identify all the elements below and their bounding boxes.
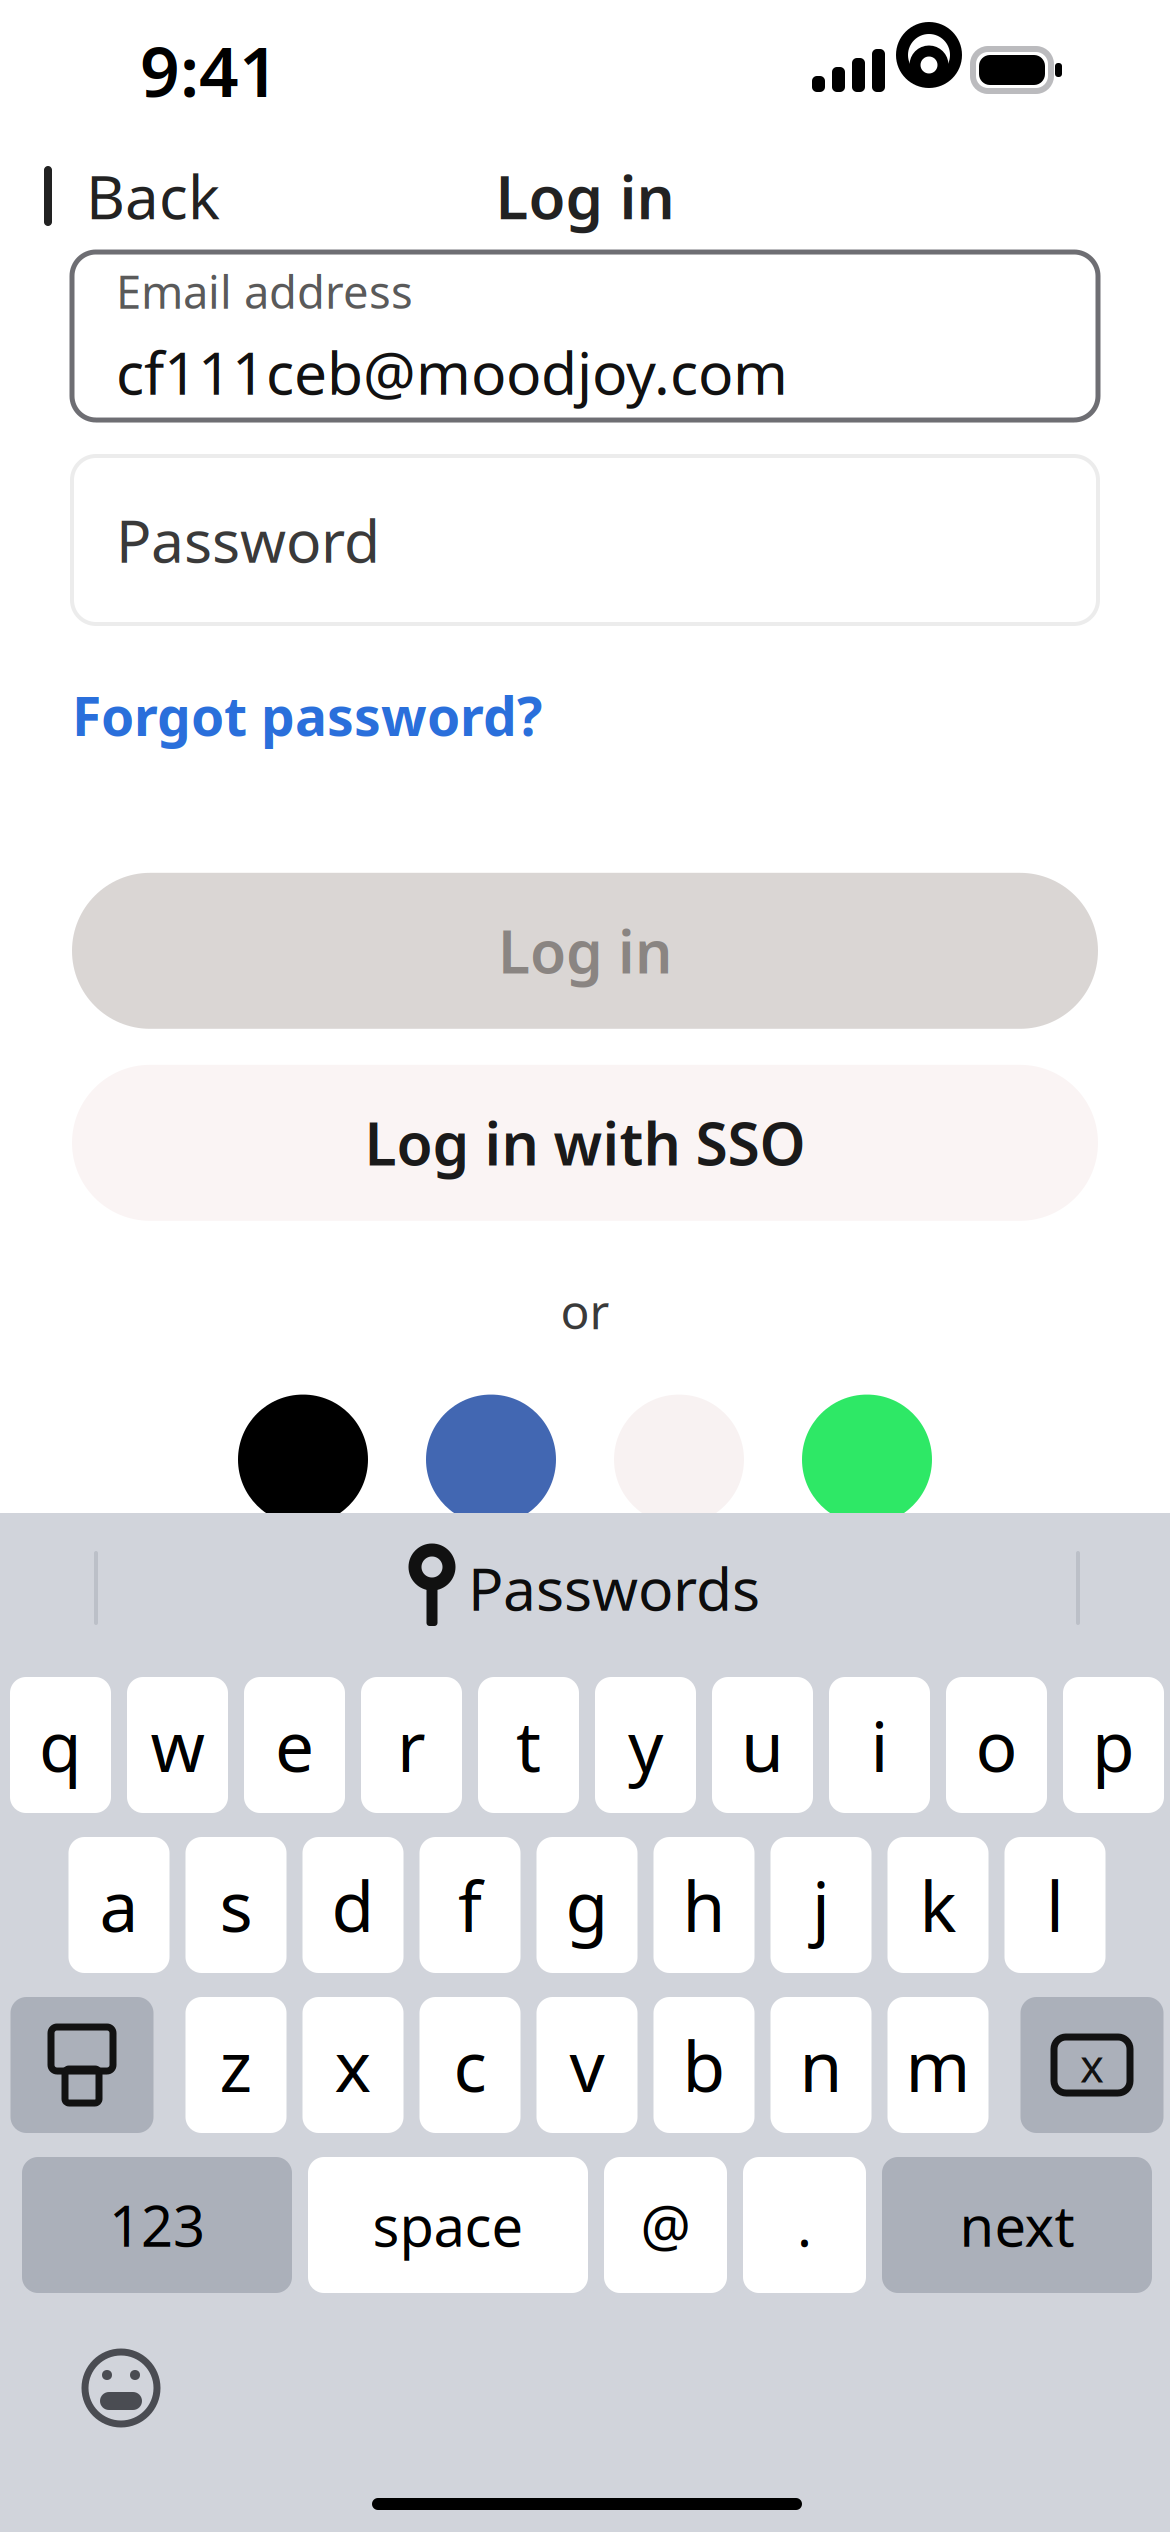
staticText: space: [372, 2188, 523, 2262]
staticText: z: [219, 2019, 252, 2111]
button[interactable]: Back: [10, 138, 248, 254]
button[interactable]: x: [302, 1997, 403, 2133]
staticText: v: [569, 2019, 604, 2111]
button[interactable]: n: [770, 1997, 871, 2133]
button[interactable]: f: [419, 1837, 520, 1973]
button[interactable]: 123: [22, 2157, 292, 2293]
button[interactable]: space: [308, 2157, 588, 2293]
button[interactable]: Sign in with Google: [614, 1395, 744, 1525]
button[interactable]: next: [882, 2157, 1152, 2293]
staticText: Log in with SSO: [364, 1104, 805, 1182]
button[interactable]: o: [946, 1677, 1047, 1813]
button[interactable]: c: [419, 1997, 520, 2133]
button[interactable]: g: [536, 1837, 637, 1973]
button[interactable]: q: [10, 1677, 111, 1813]
button[interactable]: d: [302, 1837, 403, 1973]
button[interactable]: u: [712, 1677, 813, 1813]
staticText: i: [870, 1699, 888, 1791]
button[interactable]: z: [185, 1997, 286, 2133]
staticText: Passwords: [468, 1549, 760, 1627]
button[interactable]: k: [887, 1837, 988, 1973]
button[interactable]: e: [244, 1677, 345, 1813]
staticText: 9:41: [140, 24, 279, 116]
staticText: Log in: [495, 156, 674, 236]
staticText: r: [397, 1699, 426, 1791]
button[interactable]: Email address: [72, 252, 1098, 420]
button[interactable]: m: [887, 1997, 988, 2133]
staticText: m: [905, 2019, 970, 2111]
staticText: Forgot password?: [72, 680, 542, 751]
button[interactable]: r: [361, 1677, 462, 1813]
staticText: x: [334, 2019, 371, 2111]
staticText: a: [99, 1859, 138, 1951]
button[interactable]: i: [829, 1677, 930, 1813]
staticText: p: [1092, 1699, 1135, 1791]
staticText: h: [682, 1859, 725, 1951]
staticText: q: [39, 1699, 82, 1791]
staticText: e: [275, 1699, 314, 1791]
button[interactable]: .: [743, 2157, 866, 2293]
staticText: n: [799, 2019, 842, 2111]
staticText: j: [812, 1859, 830, 1951]
staticText: x: [1080, 2035, 1104, 2095]
button[interactable]: a: [68, 1837, 169, 1973]
button[interactable]: y: [595, 1677, 696, 1813]
staticText: u: [741, 1699, 784, 1791]
staticText: or: [560, 1279, 609, 1342]
staticText: Password: [116, 501, 380, 579]
button[interactable]: t: [478, 1677, 579, 1813]
staticText: f: [458, 1859, 482, 1951]
button[interactable]: j: [770, 1837, 871, 1973]
staticText: l: [1046, 1859, 1064, 1951]
staticText: t: [516, 1699, 541, 1791]
button[interactable]: Forgot password?: [72, 666, 542, 765]
button[interactable]: Sign in with another provider: [802, 1395, 932, 1525]
staticText: .: [797, 2188, 812, 2262]
staticText: Back: [86, 156, 220, 236]
button[interactable]: b: [653, 1997, 754, 2133]
staticText: y: [628, 1699, 663, 1791]
button[interactable]: Passwords: [388, 1537, 786, 1639]
button[interactable]: p: [1063, 1677, 1164, 1813]
staticText: cf111ceb@moodjoy.com: [116, 333, 788, 411]
staticText: d: [331, 1859, 374, 1951]
button[interactable]: Delete: [1020, 1997, 1163, 2133]
button[interactable]: Sign in with Facebook: [426, 1395, 556, 1525]
button[interactable]: Sign in with Apple: [238, 1395, 368, 1525]
button[interactable]: Emoji keyboard: [60, 2333, 182, 2443]
staticText: Email address: [116, 261, 413, 321]
staticText: Log in: [498, 912, 672, 990]
button[interactable]: l: [1004, 1837, 1105, 1973]
button[interactable]: s: [185, 1837, 286, 1973]
button[interactable]: w: [127, 1677, 228, 1813]
staticText: g: [565, 1859, 608, 1951]
button[interactable]: Shift: [10, 1997, 153, 2133]
button[interactable]: h: [653, 1837, 754, 1973]
staticText: next: [959, 2188, 1074, 2262]
staticText: b: [682, 2019, 725, 2111]
staticText: 123: [109, 2188, 205, 2262]
staticText: s: [219, 1859, 252, 1951]
button[interactable]: v: [536, 1997, 637, 2133]
button[interactable]: @: [604, 2157, 727, 2293]
staticText: k: [919, 1859, 956, 1951]
button[interactable]: Log in: [72, 873, 1098, 1029]
button[interactable]: Password: [72, 456, 1098, 624]
staticText: w: [150, 1699, 204, 1791]
button[interactable]: Log in with SSO: [72, 1065, 1098, 1221]
staticText: c: [453, 2019, 486, 2111]
staticText: o: [975, 1699, 1017, 1791]
staticText: @: [640, 2188, 690, 2262]
